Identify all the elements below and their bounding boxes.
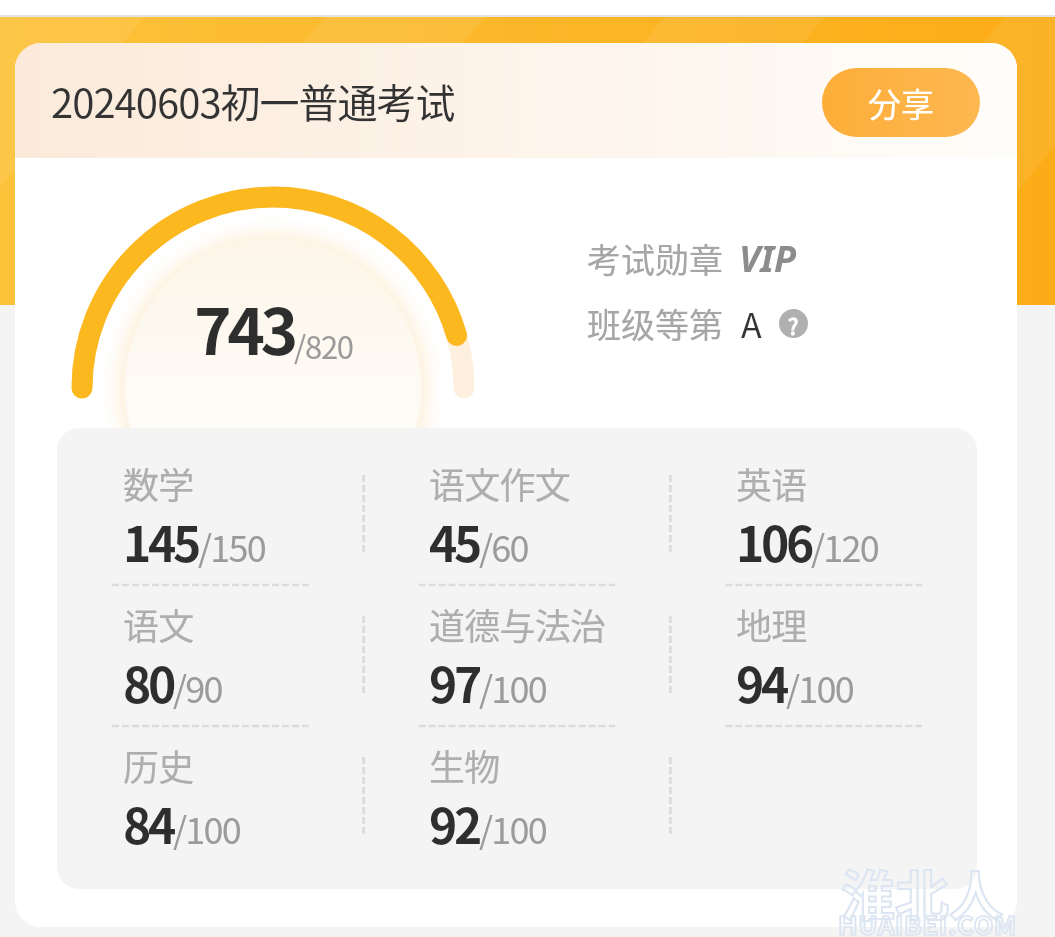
staticText: 历史: [123, 739, 194, 791]
staticText: /120: [811, 520, 878, 572]
staticText: 考试勋章: [587, 234, 723, 283]
staticText: 语文作文: [429, 457, 571, 509]
staticText: 英语: [736, 457, 807, 509]
staticText: /90: [173, 661, 222, 713]
staticText: 45: [429, 506, 479, 576]
button[interactable]: 道德与法治: [363, 585, 670, 726]
staticText: HUAIBEI.COM: [838, 905, 1017, 937]
button[interactable]: 英语: [670, 444, 977, 585]
staticText: /100: [479, 661, 546, 713]
staticText: 班级等第: [587, 299, 723, 348]
staticText: ?: [788, 309, 799, 338]
staticText: 92: [429, 788, 479, 858]
button[interactable]: 数学: [57, 444, 363, 585]
staticText: 94: [736, 647, 786, 717]
staticText: 语文: [123, 598, 194, 650]
staticText: 743: [194, 281, 294, 374]
button[interactable]: 语文作文: [363, 444, 670, 585]
staticText: 生物: [429, 739, 500, 791]
staticText: 80: [123, 647, 173, 717]
staticText: 分享: [868, 79, 934, 127]
staticText: 数学: [123, 457, 194, 509]
button[interactable]: Help: [779, 309, 808, 338]
button[interactable]: 历史: [57, 726, 363, 867]
button[interactable]: 分享: [822, 68, 980, 137]
staticText: 84: [123, 788, 173, 858]
staticText: 20240603初一普通考试: [51, 72, 455, 130]
staticText: 道德与法治: [429, 598, 606, 650]
staticText: /60: [479, 520, 528, 572]
staticText: 145: [123, 506, 198, 576]
staticText: /100: [173, 802, 240, 854]
staticText: VIP: [739, 234, 796, 283]
button[interactable]: 语文: [57, 585, 363, 726]
staticText: /820: [294, 323, 353, 368]
staticText: 97: [429, 647, 479, 717]
staticText: 106: [736, 506, 811, 576]
button[interactable]: 生物: [363, 726, 670, 867]
staticText: A: [741, 299, 762, 348]
button[interactable]: 地理: [670, 585, 977, 726]
staticText: 地理: [736, 598, 807, 650]
staticText: /150: [198, 520, 265, 572]
staticText: 淮北人: [841, 853, 1003, 931]
staticText: /100: [479, 802, 546, 854]
staticText: /100: [786, 661, 853, 713]
